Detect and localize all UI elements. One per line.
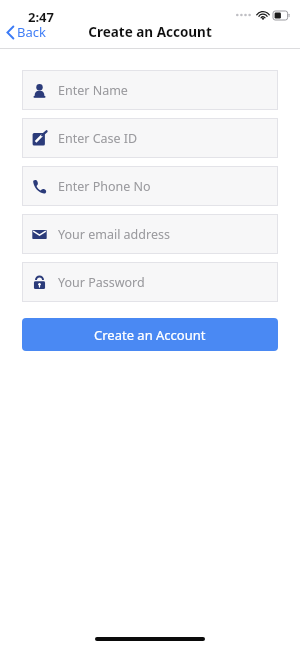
button[interactable]: Your email address [22,214,278,254]
staticText: Create an Account [94,326,206,344]
staticText: Enter Phone No [58,178,151,195]
button[interactable]: Create an Account [22,318,278,351]
staticText: Enter Case ID [58,130,138,147]
staticText: 2:47 [28,8,54,26]
staticText: Create an Account [88,23,212,41]
button[interactable]: Enter Phone No [22,166,278,206]
staticText: Back [17,23,46,41]
staticText: Your Password [58,274,145,291]
button[interactable]: Your Password [22,262,278,302]
button[interactable]: Back [4,22,48,42]
button[interactable]: Enter Name [22,70,278,110]
staticText: Your email address [58,226,170,243]
button[interactable]: Enter Case ID [22,118,278,158]
staticText: Enter Name [58,82,128,99]
